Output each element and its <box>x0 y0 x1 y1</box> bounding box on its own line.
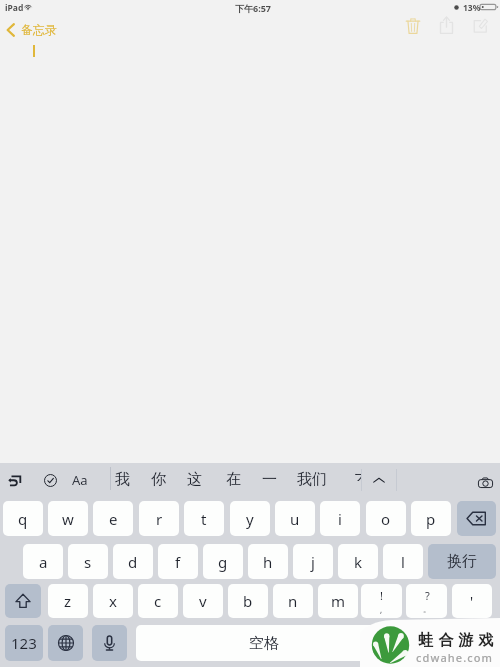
staticText: w <box>62 509 74 529</box>
button[interactable]: j <box>293 544 333 579</box>
button[interactable]: x <box>93 584 133 618</box>
staticText: f <box>175 552 181 572</box>
button[interactable]: Compose <box>467 12 493 38</box>
button[interactable]: Text format <box>69 469 91 491</box>
button[interactable]: k <box>338 544 378 579</box>
button[interactable]: n <box>273 584 313 618</box>
staticText: ! <box>380 588 383 603</box>
staticText: 一 <box>262 470 277 489</box>
button[interactable]: 换行 <box>428 544 496 579</box>
button[interactable]: 我 <box>110 467 134 491</box>
button[interactable]: c <box>138 584 178 618</box>
staticText: m <box>331 591 346 611</box>
staticText: iPad <box>5 2 24 14</box>
staticText: q <box>18 509 28 529</box>
button[interactable]: Expand candidates <box>368 469 390 491</box>
staticText: Aa <box>72 471 88 489</box>
staticText: 下午6:57 <box>235 2 271 14</box>
button[interactable]: 才 <box>354 471 362 483</box>
staticText: v <box>199 591 207 611</box>
button[interactable]: e <box>93 501 133 536</box>
staticText: 我 <box>115 470 130 489</box>
button[interactable]: Delete <box>400 13 426 39</box>
button[interactable]: f <box>158 544 198 579</box>
staticText: i <box>338 509 342 529</box>
button[interactable]: 这 <box>182 467 206 491</box>
staticText: 。 <box>423 604 431 614</box>
staticText: 备忘录 <box>21 22 57 37</box>
button[interactable]: v <box>183 584 223 618</box>
button[interactable]: p <box>411 501 451 536</box>
staticText: k <box>354 552 363 572</box>
staticText: g <box>218 552 228 572</box>
button[interactable]: a <box>23 544 63 579</box>
button[interactable]: Undo <box>4 469 26 491</box>
button[interactable]: m <box>318 584 358 618</box>
staticText: n <box>288 591 298 611</box>
staticText: e <box>109 509 118 529</box>
staticText: 蛙合游戏 <box>416 631 496 650</box>
button[interactable]: b <box>228 584 268 618</box>
button[interactable]: ? <box>406 584 447 618</box>
staticText: j <box>311 552 315 572</box>
staticText: a <box>39 552 48 572</box>
button[interactable]: u <box>275 501 315 536</box>
staticText: d <box>128 552 138 572</box>
button[interactable]: 空格 <box>136 625 392 661</box>
button[interactable]: t <box>184 501 224 536</box>
button[interactable]: 你 <box>146 467 170 491</box>
button[interactable]: w <box>48 501 88 536</box>
button[interactable]: 备忘录 <box>6 22 57 37</box>
button[interactable]: Share <box>433 12 459 38</box>
staticText: 我们 <box>297 470 327 489</box>
button[interactable]: ' <box>452 584 492 618</box>
button[interactable]: r <box>139 501 179 536</box>
staticText: h <box>263 552 273 572</box>
staticText: 这 <box>187 470 202 489</box>
button[interactable]: Camera <box>478 473 498 493</box>
staticText: 你 <box>151 470 166 489</box>
staticText: ? <box>425 588 430 603</box>
staticText: o <box>381 509 391 529</box>
staticText: c <box>154 591 162 611</box>
button[interactable]: Shift <box>5 584 41 618</box>
button[interactable]: Checklist <box>40 470 60 490</box>
button[interactable]: z <box>48 584 88 618</box>
staticText: u <box>290 509 300 529</box>
staticText: r <box>156 509 163 529</box>
button[interactable]: h <box>248 544 288 579</box>
staticText: 空格 <box>249 634 279 653</box>
staticText: 才 <box>354 471 362 481</box>
button[interactable]: 一 <box>257 467 281 491</box>
staticText: p <box>426 509 436 529</box>
staticText: s <box>84 552 92 572</box>
staticText: 123 <box>11 633 37 653</box>
button[interactable]: o <box>366 501 406 536</box>
button[interactable]: 我们 <box>297 467 327 491</box>
button[interactable]: l <box>383 544 423 579</box>
staticText: , <box>380 604 383 615</box>
button[interactable]: y <box>230 501 270 536</box>
staticText: 换行 <box>447 552 477 571</box>
button[interactable]: Switch keyboard <box>48 625 83 661</box>
button[interactable]: s <box>68 544 108 579</box>
button[interactable]: 在 <box>221 467 245 491</box>
button[interactable]: g <box>203 544 243 579</box>
staticText: l <box>401 552 405 572</box>
staticText: 在 <box>226 470 241 489</box>
button[interactable]: Dictation <box>92 625 127 661</box>
button[interactable]: q <box>3 501 43 536</box>
staticText: b <box>243 591 253 611</box>
staticText: z <box>64 591 72 611</box>
button[interactable]: 123 <box>5 625 43 661</box>
button[interactable]: i <box>320 501 360 536</box>
staticText: x <box>109 591 117 611</box>
staticText: cdwahe.com <box>416 650 494 665</box>
staticText: t <box>201 509 207 529</box>
staticText: 13% <box>463 2 481 14</box>
staticText: y <box>246 509 254 529</box>
staticText: ' <box>470 592 474 611</box>
button[interactable]: ! <box>361 584 402 618</box>
button[interactable]: d <box>113 544 153 579</box>
button[interactable]: Backspace <box>457 501 496 536</box>
